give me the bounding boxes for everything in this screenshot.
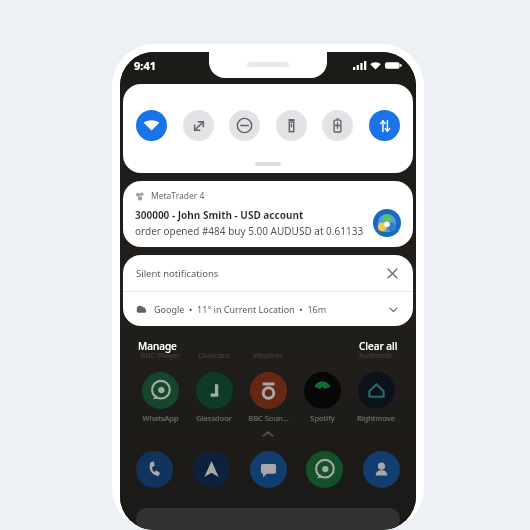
staticText: Spotify	[310, 413, 335, 423]
button[interactable]: Do not disturb	[229, 110, 260, 141]
staticText: Silent notifications	[136, 267, 219, 280]
staticText: Glassdoor	[196, 413, 232, 423]
button[interactable]: Clubcard	[188, 350, 240, 360]
button[interactable]: Contacts	[363, 451, 400, 488]
staticText: order opened #484 buy 5.00 AUDUSD at 0.6…	[135, 224, 364, 238]
button[interactable]: Navigation	[193, 451, 230, 488]
button[interactable]: Expand notification	[386, 302, 400, 316]
button[interactable]: Weather	[242, 350, 294, 360]
button[interactable]: Clear all	[355, 336, 402, 356]
button[interactable]: Silent notifications	[123, 255, 413, 291]
button[interactable]: Flashlight	[276, 110, 307, 141]
button[interactable]: Messages	[250, 451, 287, 488]
button[interactable]: BBC Soun...	[242, 372, 294, 423]
button[interactable]: Battery saver	[322, 110, 353, 141]
staticText: MetaTrader 4	[151, 190, 205, 202]
button[interactable]: Dismiss silent notifications	[384, 265, 400, 281]
button[interactable]: Mobile data	[369, 110, 400, 141]
button[interactable]: Manage	[134, 336, 181, 356]
staticText: Rightmove	[357, 413, 395, 423]
button[interactable]: Wi-Fi	[136, 110, 167, 141]
button[interactable]: BBC iPlayer	[134, 350, 186, 360]
button[interactable]: Glassdoor	[188, 372, 240, 423]
staticText: BBC Soun...	[248, 413, 289, 423]
staticText: 300000 - John Smith - USD account	[135, 208, 304, 222]
staticText: BBC iPlayer	[140, 350, 181, 360]
button[interactable]: MetaTrader 4	[123, 181, 413, 247]
staticText: Authentic	[359, 350, 393, 360]
button[interactable]: Rightmove	[350, 372, 402, 423]
staticText: Manage	[138, 339, 177, 353]
button[interactable]: WhatsApp	[134, 372, 186, 423]
staticText: 9:41	[134, 58, 156, 73]
button[interactable]: WhatsApp	[306, 451, 343, 488]
button[interactable]: Auto rotate	[183, 110, 214, 141]
button[interactable]: Authentic	[350, 350, 402, 360]
button[interactable]: Phone	[136, 451, 173, 488]
staticText: WhatsApp	[142, 413, 179, 423]
button[interactable]: Spotify	[296, 372, 348, 423]
button[interactable]: Search	[136, 508, 400, 530]
staticText: Weather	[253, 350, 283, 360]
staticText: Clubcard	[198, 350, 230, 360]
staticText: Clear all	[359, 339, 398, 353]
staticText: Google • 11° in Current Location • 16m	[154, 303, 327, 315]
button[interactable]: Google • 11° in Current Location • 16m	[123, 292, 413, 326]
